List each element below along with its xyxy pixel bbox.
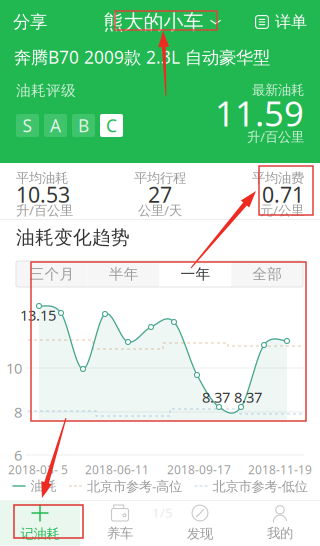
staticText: 2018-03- 5 bbox=[8, 461, 68, 477]
staticText: 一年 bbox=[180, 265, 210, 283]
staticText: 我的 bbox=[267, 525, 293, 541]
staticText: 0.71 bbox=[262, 180, 304, 209]
staticText: 1/5 bbox=[152, 504, 173, 521]
button[interactable]: 记油耗 bbox=[0, 501, 80, 546]
staticText: 2018-11-19 bbox=[248, 461, 312, 477]
staticText: 10.53 bbox=[16, 180, 70, 209]
staticText: 6 bbox=[14, 445, 22, 465]
staticText: 记油耗 bbox=[20, 525, 59, 542]
button[interactable]: 熊大的小车 bbox=[103, 0, 220, 44]
button[interactable]: 一年 bbox=[159, 261, 231, 287]
staticText: 升/百公里 bbox=[16, 201, 73, 219]
button[interactable]: 三个月 bbox=[16, 261, 88, 287]
staticText: 养车 bbox=[107, 525, 133, 541]
staticText: 最新油耗 bbox=[252, 82, 304, 98]
staticText: 奔腾B70 2009款 2.3L 自动豪华型 bbox=[14, 45, 270, 68]
staticText: 升/百公里 bbox=[247, 128, 304, 145]
staticText: 8.37 8.37 bbox=[202, 387, 262, 407]
staticText: 油耗评级 bbox=[16, 81, 76, 99]
staticText: 10 bbox=[6, 358, 22, 378]
staticText: 北京市参考-低位 bbox=[212, 477, 307, 495]
button[interactable]: 养车 bbox=[80, 501, 160, 546]
staticText: S bbox=[22, 114, 32, 137]
staticText: 油耗 bbox=[30, 478, 56, 494]
button[interactable]: 详单 bbox=[255, 0, 320, 44]
staticText: 油耗变化趋势 bbox=[16, 226, 130, 249]
staticText: 平均行程 bbox=[134, 170, 186, 186]
button[interactable]: 全部 bbox=[231, 261, 303, 287]
staticText: 北京市参考-高位 bbox=[87, 477, 182, 495]
staticText: 三个月 bbox=[29, 265, 74, 283]
staticText: C bbox=[106, 114, 117, 137]
button[interactable]: 我的 bbox=[240, 501, 320, 546]
staticText: 2018-06-11 bbox=[85, 461, 149, 477]
staticText: 元/公里 bbox=[260, 201, 304, 219]
staticText: 详单 bbox=[275, 12, 307, 32]
staticText: 公里/天 bbox=[138, 201, 182, 219]
button[interactable]: 发现 bbox=[160, 501, 240, 546]
staticText: 熊大的小车 bbox=[103, 10, 203, 34]
staticText: 13.15 bbox=[20, 305, 56, 325]
button[interactable]: 分享 bbox=[0, 0, 69, 44]
staticText: 8 bbox=[14, 402, 22, 422]
staticText: 平均油耗 bbox=[16, 170, 68, 186]
staticText: A bbox=[50, 114, 61, 137]
staticText: 11.59 bbox=[215, 90, 304, 136]
staticText: 半年 bbox=[109, 265, 139, 283]
staticText: B bbox=[78, 114, 89, 137]
staticText: 2018-09-17 bbox=[167, 461, 231, 477]
staticText: 27 bbox=[148, 180, 172, 209]
button[interactable]: 半年 bbox=[88, 261, 160, 287]
staticText: 平均油费 bbox=[252, 170, 304, 186]
staticText: 分享 bbox=[13, 11, 47, 33]
staticText: 全部 bbox=[252, 265, 282, 283]
staticText: 发现 bbox=[187, 525, 213, 542]
